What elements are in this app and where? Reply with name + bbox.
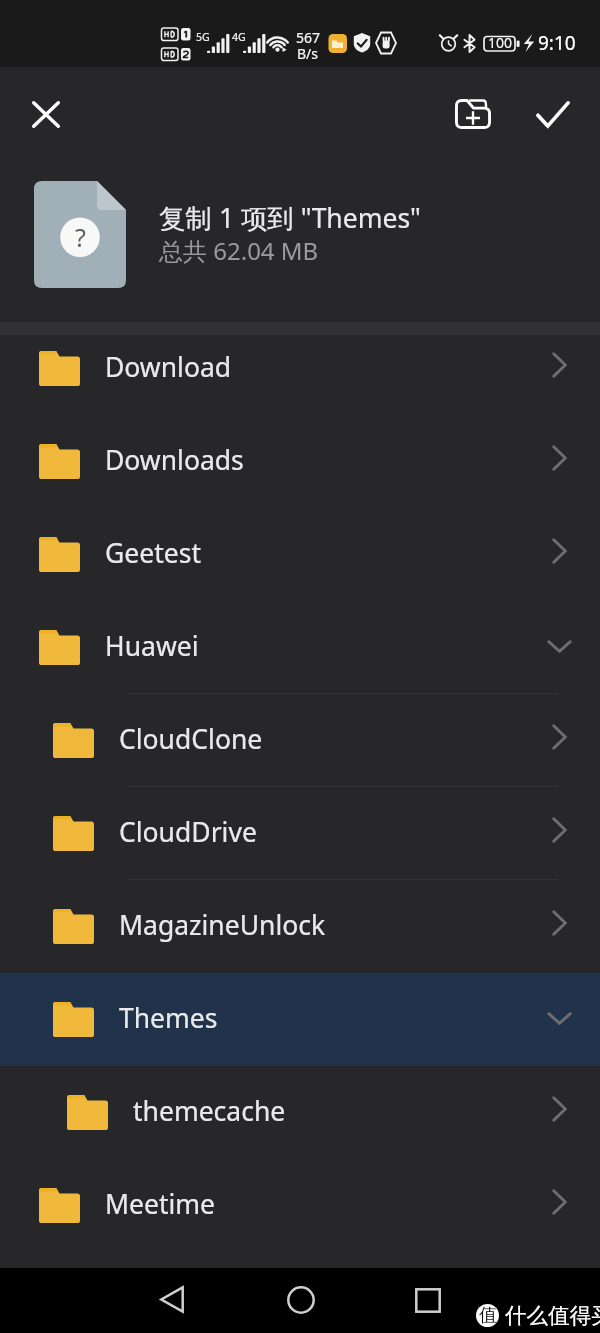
staticText: ? bbox=[75, 220, 86, 254]
staticText: CloudDrive bbox=[119, 814, 257, 850]
staticText: themecache bbox=[133, 1093, 286, 1129]
staticText: 567 bbox=[296, 28, 321, 47]
staticText: Downloads bbox=[105, 442, 244, 478]
staticText: 5G bbox=[196, 30, 210, 44]
staticText: Meetime bbox=[105, 1186, 216, 1222]
button[interactable]: CloudClone bbox=[0, 694, 600, 787]
button[interactable]: Download bbox=[0, 322, 600, 415]
staticText: MagazineUnlock bbox=[119, 907, 326, 943]
staticText: Download bbox=[105, 349, 232, 385]
button[interactable]: Confirm bbox=[517, 78, 589, 150]
staticText: 4G bbox=[232, 30, 246, 44]
staticText: 100 bbox=[488, 33, 513, 52]
staticText: B/s bbox=[297, 44, 319, 63]
staticText: 9:10 bbox=[538, 30, 576, 56]
button[interactable]: Recents bbox=[403, 1276, 452, 1325]
staticText: Geetest bbox=[105, 535, 201, 571]
button[interactable]: New folder bbox=[437, 78, 509, 150]
staticText: Themes bbox=[119, 1000, 218, 1036]
button[interactable]: Downloads bbox=[0, 415, 600, 508]
staticText: 复制 1 项到 "Themes" bbox=[159, 200, 421, 236]
button[interactable]: Huawei bbox=[0, 601, 600, 694]
button[interactable]: Back bbox=[147, 1275, 196, 1324]
button[interactable]: CloudDrive bbox=[0, 787, 600, 880]
button[interactable]: Close bbox=[10, 78, 82, 150]
button[interactable]: Meetime bbox=[0, 1159, 600, 1252]
button[interactable]: MagazineUnlock bbox=[0, 880, 600, 973]
staticText: Huawei bbox=[105, 628, 199, 664]
staticText: 总共 62.04 MB bbox=[159, 234, 319, 267]
button[interactable]: Geetest bbox=[0, 508, 600, 601]
staticText: 值 bbox=[479, 1304, 497, 1327]
button[interactable]: Themes bbox=[0, 973, 600, 1066]
staticText: CloudClone bbox=[119, 721, 263, 757]
button[interactable]: Home bbox=[276, 1275, 325, 1324]
staticText: 什么值得买 bbox=[505, 1302, 600, 1329]
button[interactable]: themecache bbox=[0, 1066, 600, 1159]
